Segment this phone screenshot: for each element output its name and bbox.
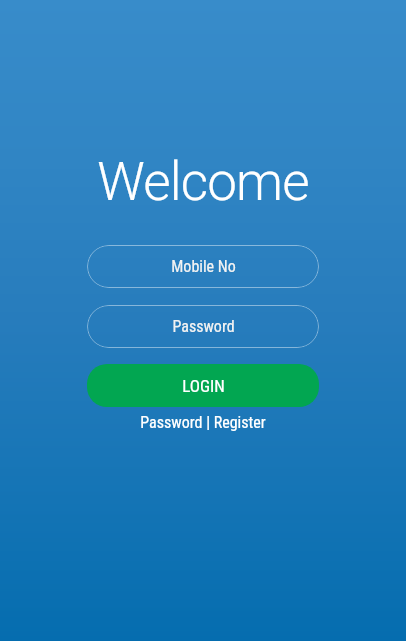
button[interactable]: Password | Register xyxy=(134,413,272,432)
button[interactable]: Password xyxy=(87,305,319,348)
button[interactable]: Mobile No xyxy=(87,245,319,288)
staticText: LOGIN xyxy=(182,376,225,396)
staticText: Password xyxy=(172,317,235,336)
staticText: Welcome xyxy=(97,151,309,213)
button[interactable]: LOGIN xyxy=(87,364,319,407)
staticText: Mobile No xyxy=(171,257,236,276)
staticText: Password | Register xyxy=(140,413,266,432)
